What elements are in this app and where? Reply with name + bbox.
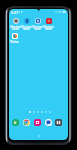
staticText: Photos <box>10 40 19 44</box>
staticText: 9:41 <box>11 10 19 15</box>
button[interactable]: Page indicator <box>29 111 51 113</box>
button[interactable]: Messages <box>45 119 52 126</box>
staticText: Shortcut name <box>32 25 43 31</box>
button[interactable]: Instagram <box>34 119 41 126</box>
button[interactable]: App shortcut <box>43 18 54 31</box>
button[interactable]: Chrome <box>23 119 30 126</box>
button[interactable]: App shortcut <box>32 18 43 31</box>
button[interactable]: Phone <box>12 119 19 126</box>
staticText: Shortcut name <box>10 25 21 31</box>
staticText: Shortcut name <box>21 25 32 31</box>
button[interactable]: App shortcut <box>9 33 20 44</box>
button[interactable]: App shortcut <box>10 18 21 31</box>
button[interactable]: App shortcut <box>21 18 32 31</box>
staticText: Shortcut name <box>43 25 54 31</box>
button[interactable]: Apps <box>55 119 62 126</box>
